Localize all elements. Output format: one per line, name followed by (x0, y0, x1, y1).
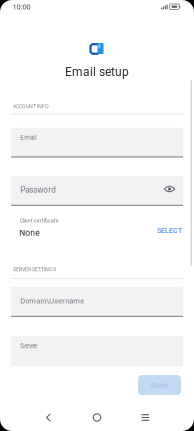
button[interactable]: Server (11, 336, 183, 366)
staticText: Next (151, 380, 168, 390)
staticText: SERVER SETTINGS (13, 266, 56, 273)
staticText: Email setup (65, 65, 129, 79)
staticText: Password (20, 185, 56, 195)
button[interactable]: SELECT (152, 220, 186, 240)
staticText: Domain\Username (20, 297, 84, 305)
staticText: Client certificate (20, 217, 59, 224)
button[interactable]: Password (11, 176, 183, 206)
staticText: ACCOUNT INFO (13, 103, 49, 110)
staticText: 10:00 (13, 3, 31, 11)
button[interactable]: Domain\Username (11, 287, 183, 317)
button[interactable]: Back (31, 405, 65, 429)
button[interactable]: Home (80, 405, 114, 429)
button[interactable]: Next (138, 375, 181, 395)
staticText: None (19, 228, 39, 238)
staticText: Server (20, 342, 37, 350)
staticText: Email (20, 134, 37, 141)
button[interactable]: Recent apps (128, 405, 162, 429)
button[interactable]: Email (11, 127, 183, 157)
staticText: SELECT (157, 226, 182, 235)
